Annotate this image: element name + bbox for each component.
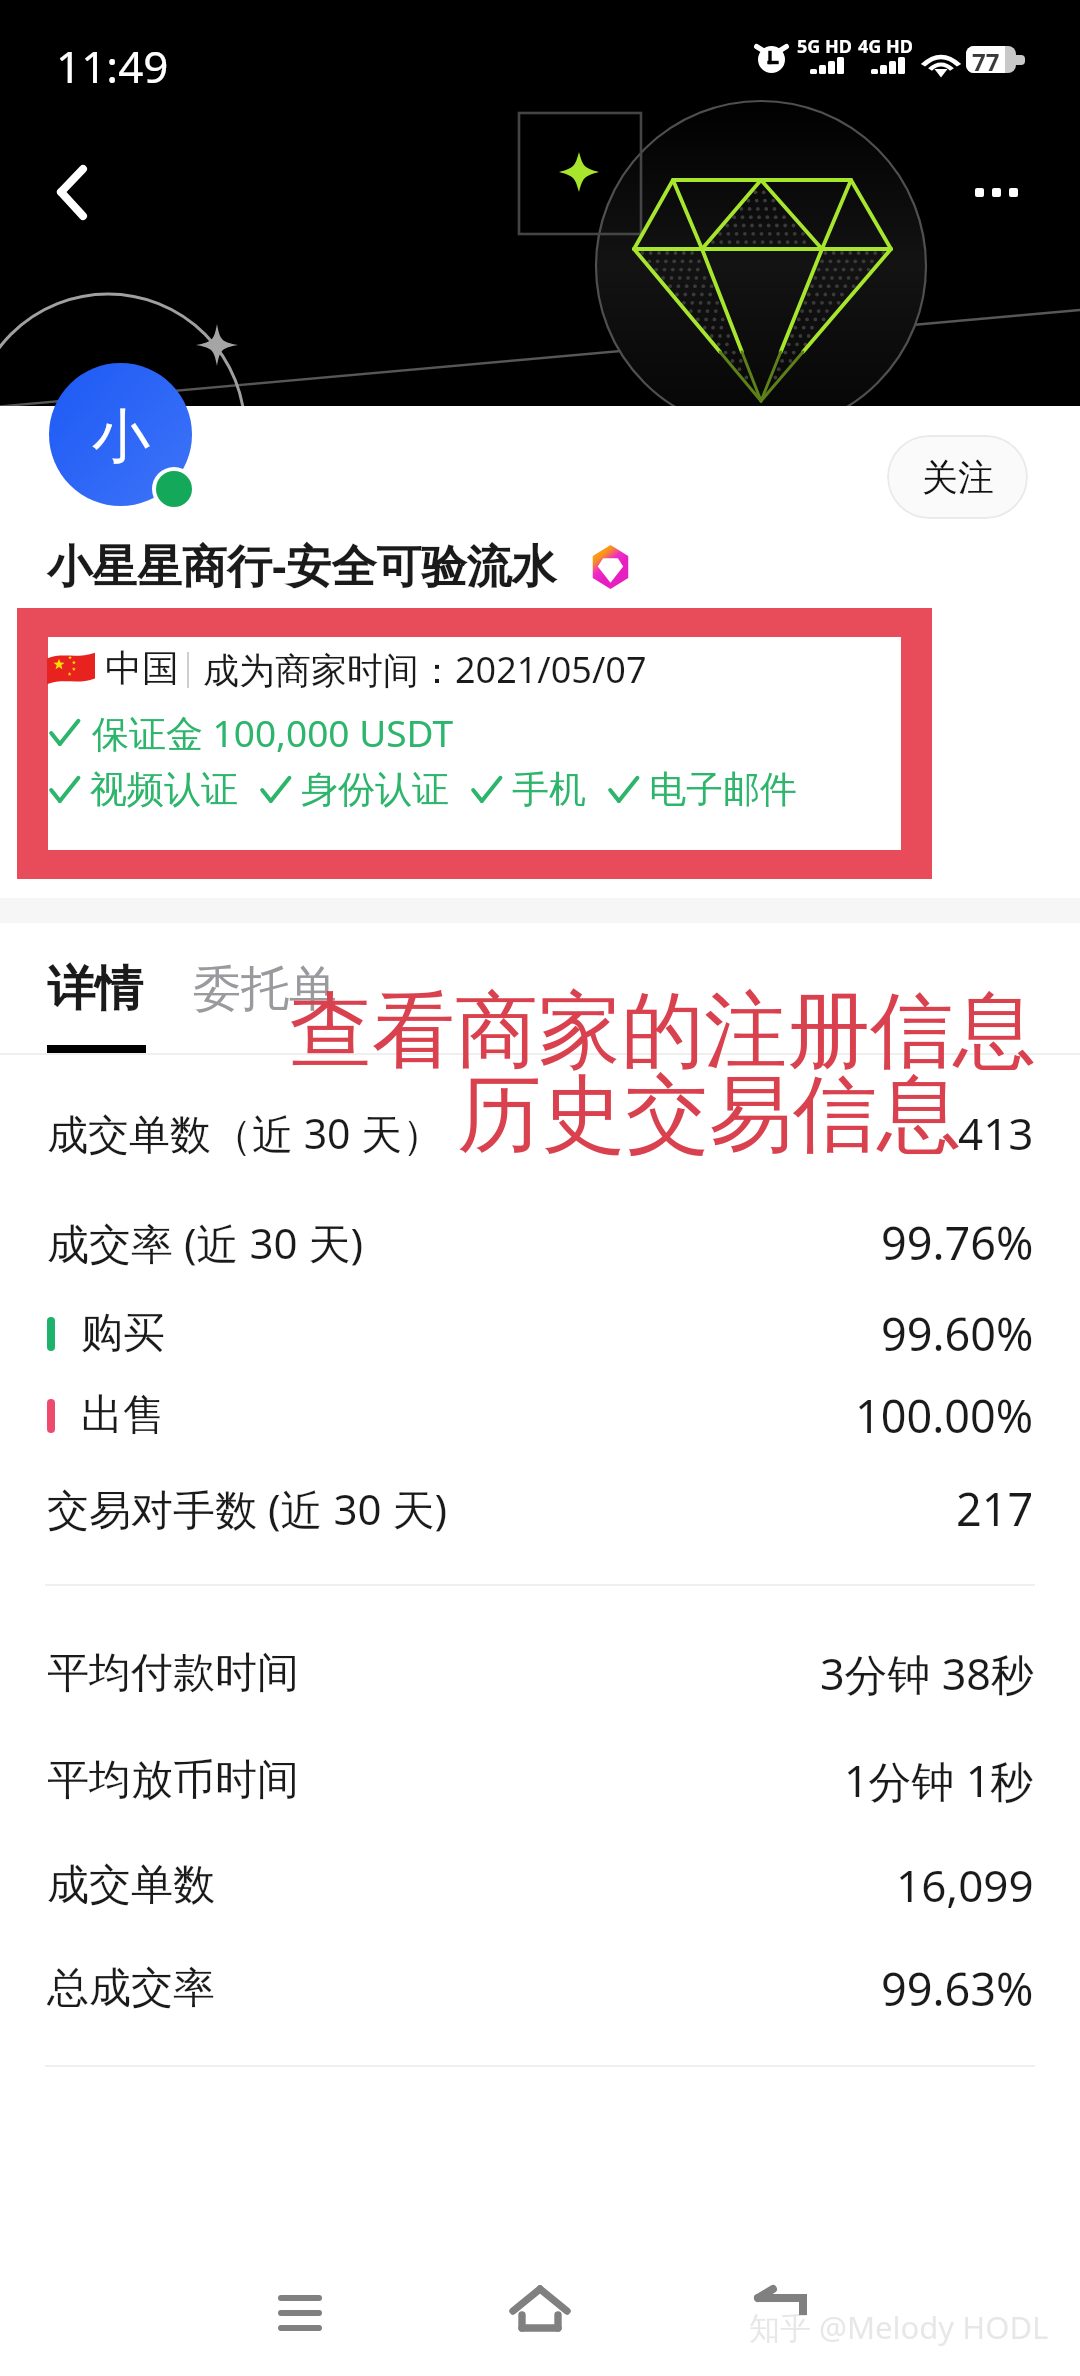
button[interactable]: 平均放币时间 (0, 1735, 1080, 1825)
staticText: 历史交易信息 (457, 1062, 961, 1168)
button[interactable]: More options (953, 149, 1039, 235)
button[interactable]: Home (490, 2263, 590, 2363)
staticText: 平均放币时间 (47, 1754, 299, 1807)
staticText: 4G HD (858, 34, 913, 59)
staticText: 77 (972, 45, 1000, 72)
staticText: 小 (92, 400, 150, 473)
staticText: 详情 (47, 959, 143, 1019)
staticText: 知乎 @Melody HODL (749, 2306, 1049, 2348)
staticText: 5G HD (797, 34, 852, 59)
staticText: 11:49 (56, 36, 169, 96)
button[interactable]: 详情 (47, 950, 146, 1053)
button[interactable]: 总成交率 (0, 1943, 1080, 2033)
staticText: 成交率 (近 30 天) (47, 1214, 364, 1271)
button[interactable]: 成交单数（近 30 天） (0, 1088, 1080, 1178)
staticText: 成为商家时间：2021/05/07 (203, 645, 647, 694)
staticText: 中国 (105, 645, 179, 692)
staticText: 成交单数 (47, 1859, 215, 1912)
staticText: 出售 (81, 1389, 165, 1442)
button[interactable]: 出售 (0, 1370, 1080, 1460)
staticText: 购买 (81, 1307, 165, 1360)
staticText: 总成交率 (47, 1962, 215, 2015)
staticText: 16,099 (896, 1855, 1034, 1915)
staticText: 保证金 100,000 USDT (92, 707, 453, 758)
staticText: 100.00% (855, 1385, 1034, 1446)
staticText: 视频认证 (90, 766, 238, 813)
staticText: 成交单数（近 30 天） (47, 1105, 444, 1161)
button[interactable]: 交易对手数 (近 30 天) (0, 1463, 1080, 1553)
button[interactable]: 平均付款时间 (0, 1628, 1080, 1718)
button[interactable]: 关注 (887, 435, 1028, 519)
button[interactable]: Recent apps (250, 2263, 350, 2363)
staticText: 217 (956, 1478, 1034, 1539)
staticText: 电子邮件 (649, 766, 797, 813)
button[interactable]: Back (732, 2263, 832, 2363)
staticText: 小星星商行-安全可验流水 (47, 534, 557, 595)
staticText: 99.60% (881, 1303, 1034, 1364)
button[interactable]: 成交单数 (0, 1840, 1080, 1930)
staticText: 手机 (512, 766, 586, 813)
button[interactable]: Back (30, 150, 116, 236)
staticText: 关注 (922, 455, 994, 500)
staticText: 99.76% (881, 1212, 1034, 1273)
staticText: 99.63% (881, 1958, 1034, 2019)
staticText: 平均付款时间 (47, 1647, 299, 1700)
button[interactable]: 委托单 (193, 950, 337, 1020)
staticText: 委托单 (193, 959, 337, 1019)
staticText: 查看商家的注册信息 (289, 979, 1036, 1084)
button[interactable]: 成交率 (近 30 天) (0, 1197, 1080, 1287)
staticText: 413 (958, 1103, 1034, 1163)
staticText: 1分钟 1秒 (844, 1751, 1034, 1810)
staticText: 身份认证 (301, 766, 449, 813)
staticText: 3分钟 38秒 (820, 1644, 1034, 1703)
staticText: 交易对手数 (近 30 天) (47, 1480, 448, 1537)
button[interactable]: 购买 (0, 1288, 1080, 1378)
